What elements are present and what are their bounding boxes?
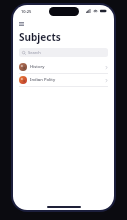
button[interactable]: Search [19,48,108,57]
staticText: Subjects [19,30,61,44]
button[interactable]: Indian Polity [13,74,114,86]
staticText: Indian Polity [30,77,56,83]
staticText: Search [28,50,41,55]
staticText: History [30,64,45,70]
staticText: 10:25 [21,9,32,14]
button[interactable]: Menu [19,20,27,28]
button[interactable]: History [13,61,114,73]
